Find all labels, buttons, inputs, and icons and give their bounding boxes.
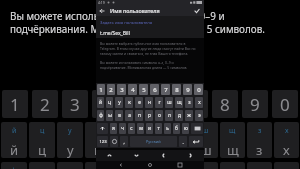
- button[interactable]: Стрелка: [177, 150, 204, 161]
- button[interactable]: р: [145, 110, 153, 121]
- button[interactable]: 1: [2, 90, 28, 118]
- button[interactable]: 6: [152, 90, 178, 118]
- button[interactable]: ь: [164, 123, 171, 134]
- button[interactable]: в: [115, 110, 123, 121]
- button[interactable]: Пробел: [130, 136, 177, 147]
- button[interactable]: г: [166, 122, 191, 158]
- button[interactable]: п: [112, 162, 137, 169]
- button[interactable]: о: [166, 162, 191, 169]
- button[interactable]: х: [195, 97, 203, 108]
- button[interactable]: Enter: [189, 136, 203, 147]
- button[interactable]: 7: [182, 90, 208, 118]
- button[interactable]: а: [125, 110, 133, 121]
- button[interactable]: Назад: [96, 5, 107, 16]
- button[interactable]: 8: [172, 84, 181, 95]
- button[interactable]: Стрелка: [96, 150, 123, 161]
- button[interactable]: э: [195, 110, 203, 121]
- staticText: 2: [40, 93, 50, 116]
- button[interactable]: е: [135, 97, 143, 108]
- staticText: о: [158, 112, 161, 119]
- button[interactable]: 7: [161, 84, 170, 95]
- button[interactable]: 3: [117, 84, 126, 95]
- staticText: ,: [123, 139, 125, 145]
- staticText: 0: [197, 86, 201, 94]
- button[interactable]: Стрелка: [123, 150, 150, 161]
- button[interactable]: ц: [106, 97, 113, 108]
- button[interactable]: 123: [97, 136, 108, 147]
- button[interactable]: 1: [97, 84, 105, 95]
- staticText: в: [118, 112, 121, 119]
- button[interactable]: к: [85, 122, 110, 158]
- button[interactable]: 9: [183, 84, 192, 95]
- button[interactable]: б: [173, 123, 180, 134]
- button[interactable]: л: [165, 110, 173, 121]
- button[interactable]: т: [155, 123, 162, 134]
- button[interactable]: щ: [220, 122, 245, 158]
- button[interactable]: Домой: [145, 161, 155, 169]
- button[interactable]: Назад: [116, 161, 126, 169]
- button[interactable]: 5: [122, 90, 148, 118]
- button[interactable]: 5: [139, 84, 148, 95]
- button[interactable]: п: [135, 110, 143, 121]
- button[interactable]: 9: [242, 90, 268, 118]
- button[interactable]: м: [137, 123, 144, 134]
- button[interactable]: й: [1, 122, 27, 158]
- button[interactable]: г: [155, 97, 163, 108]
- button[interactable]: у: [115, 97, 123, 108]
- button[interactable]: щ: [175, 97, 183, 108]
- button[interactable]: ч: [119, 123, 126, 134]
- button[interactable]: д: [175, 110, 183, 121]
- button[interactable]: о: [155, 110, 163, 121]
- button[interactable]: Backspace: [191, 123, 203, 134]
- button[interactable]: 8: [212, 90, 238, 118]
- button[interactable]: у: [57, 122, 83, 158]
- button[interactable]: ц: [29, 122, 55, 158]
- button[interactable]: с: [128, 123, 135, 134]
- button[interactable]: я: [110, 123, 117, 134]
- button[interactable]: и: [146, 123, 153, 134]
- button[interactable]: .: [179, 136, 187, 147]
- button[interactable]: 2: [107, 84, 115, 95]
- button[interactable]: ш: [165, 97, 173, 108]
- staticText: 0: [280, 93, 290, 116]
- button[interactable]: а: [85, 162, 110, 169]
- button[interactable]: е: [112, 122, 137, 158]
- button[interactable]: ш: [193, 122, 218, 158]
- button[interactable]: Стрелка: [150, 150, 177, 161]
- button[interactable]: 3: [62, 90, 88, 118]
- staticText: щ: [229, 126, 236, 136]
- button[interactable]: Недавние: [175, 161, 185, 169]
- button[interactable]: 2: [32, 90, 58, 118]
- button[interactable]: ы: [106, 110, 113, 121]
- button[interactable]: 6: [150, 84, 159, 95]
- staticText: 3: [70, 93, 80, 116]
- button[interactable]: 0: [272, 90, 298, 118]
- button[interactable]: з: [247, 122, 272, 158]
- button[interactable]: ю: [182, 123, 189, 134]
- button[interactable]: к: [125, 97, 133, 108]
- button[interactable]: 4: [128, 84, 137, 95]
- button[interactable]: 0: [194, 84, 203, 95]
- button[interactable]: з: [185, 97, 193, 108]
- button[interactable]: ,: [120, 136, 128, 147]
- button[interactable]: Shift: [97, 123, 108, 134]
- button[interactable]: Готово: [191, 5, 202, 16]
- button[interactable]: р: [139, 162, 164, 169]
- button[interactable]: л: [193, 162, 218, 169]
- button[interactable]: н: [145, 97, 153, 108]
- button[interactable]: ж: [185, 110, 193, 121]
- button[interactable]: Emoji: [110, 136, 118, 147]
- button[interactable]: 4: [92, 90, 118, 118]
- button[interactable]: ф: [1, 162, 27, 169]
- button[interactable]: н: [139, 122, 164, 158]
- staticText: 3: [120, 86, 124, 94]
- button[interactable]: ф: [97, 110, 104, 121]
- staticText: с: [130, 125, 133, 132]
- button[interactable]: й: [97, 97, 104, 108]
- button[interactable]: х: [274, 122, 299, 158]
